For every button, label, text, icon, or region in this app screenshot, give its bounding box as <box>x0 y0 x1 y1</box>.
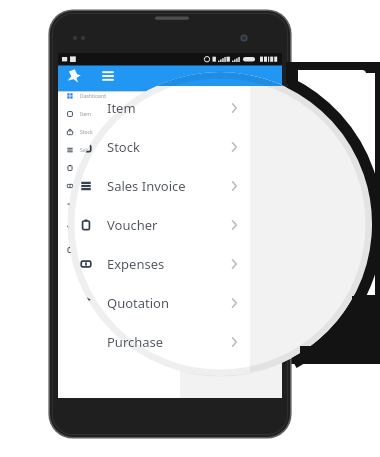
staticText: Sales <box>80 147 93 154</box>
button[interactable]: Quotation <box>68 285 250 321</box>
button[interactable]: Voucher <box>68 207 250 243</box>
staticText: Voucher <box>80 165 100 172</box>
staticText: Stock <box>80 129 93 136</box>
button[interactable]: Item <box>68 90 250 126</box>
button[interactable]: Expenses <box>68 246 250 282</box>
staticText: Item <box>80 111 91 118</box>
staticText: Stock <box>107 138 140 156</box>
staticText: Item <box>107 99 136 117</box>
button[interactable]: App logo <box>62 64 88 88</box>
staticText: Expenses <box>107 255 165 273</box>
staticText: Expenses <box>80 183 103 190</box>
staticText: Voucher <box>107 216 158 234</box>
staticText: Quotation <box>107 294 169 312</box>
button[interactable]: Open navigation drawer <box>94 64 122 88</box>
button[interactable]: Purchase <box>68 324 250 360</box>
button[interactable]: Sales Invoice <box>68 168 250 204</box>
staticText: Sales Invoice <box>107 177 186 195</box>
staticText: Purchase <box>107 333 164 351</box>
staticText: Purchase <box>80 225 102 232</box>
staticText: Dashboard <box>80 93 106 100</box>
button[interactable]: Stock <box>68 129 250 165</box>
